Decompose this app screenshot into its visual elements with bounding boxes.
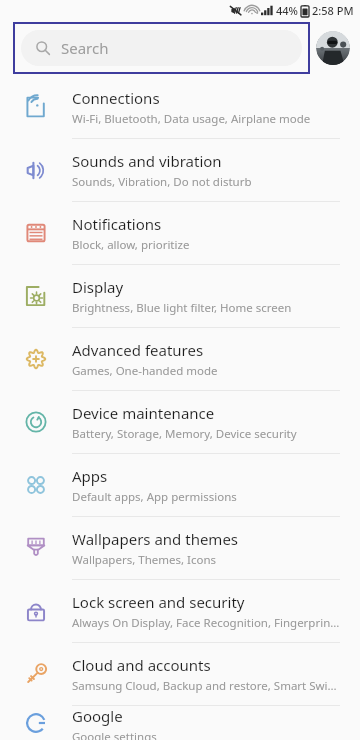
- staticText: Search: [61, 38, 109, 58]
- staticText: Battery, Storage, Memory, Device securit…: [72, 426, 297, 442]
- button[interactable]: Connections: [0, 76, 360, 138]
- staticText: Default apps, App permissions: [72, 489, 237, 505]
- button[interactable]: Advanced features: [0, 328, 360, 390]
- staticText: Samsung Cloud, Backup and restore, Smart…: [72, 678, 340, 694]
- staticText: Sounds, Vibration, Do not disturb: [72, 174, 252, 190]
- staticText: Sounds and vibration: [72, 151, 222, 171]
- staticText: 2:58 PM: [312, 3, 354, 18]
- staticText: Connections: [72, 88, 160, 108]
- staticText: Display: [72, 277, 124, 297]
- button[interactable]: Google: [0, 706, 360, 740]
- staticText: Block, allow, prioritize: [72, 237, 190, 253]
- button[interactable]: Wallpapers and themes: [0, 517, 360, 579]
- staticText: Cloud and accounts: [72, 655, 211, 675]
- staticText: Games, One-handed mode: [72, 363, 218, 379]
- staticText: Lock screen and security: [72, 592, 245, 612]
- staticText: Advanced features: [72, 340, 204, 360]
- button[interactable]: Lock screen and security: [0, 580, 360, 642]
- button[interactable]: Apps: [0, 454, 360, 516]
- button[interactable]: Profile: [316, 31, 350, 65]
- button[interactable]: Cloud and accounts: [0, 643, 360, 705]
- staticText: Always On Display, Face Recognition, Fin…: [72, 615, 340, 631]
- button[interactable]: Sounds and vibration: [0, 139, 360, 201]
- button[interactable]: Notifications: [0, 202, 360, 264]
- button[interactable]: Device maintenance: [0, 391, 360, 453]
- staticText: Brightness, Blue light filter, Home scre…: [72, 300, 292, 316]
- staticText: Wallpapers and themes: [72, 529, 239, 549]
- staticText: Wi-Fi, Bluetooth, Data usage, Airplane m…: [72, 111, 311, 127]
- staticText: Google settings: [72, 729, 157, 740]
- staticText: 44%: [276, 3, 298, 18]
- staticText: Notifications: [72, 214, 162, 234]
- staticText: Google: [72, 706, 123, 726]
- staticText: Wallpapers, Themes, Icons: [72, 552, 217, 568]
- staticText: Device maintenance: [72, 403, 215, 423]
- button[interactable]: Display: [0, 265, 360, 327]
- button[interactable]: Search: [15, 24, 308, 72]
- staticText: Apps: [72, 466, 108, 486]
